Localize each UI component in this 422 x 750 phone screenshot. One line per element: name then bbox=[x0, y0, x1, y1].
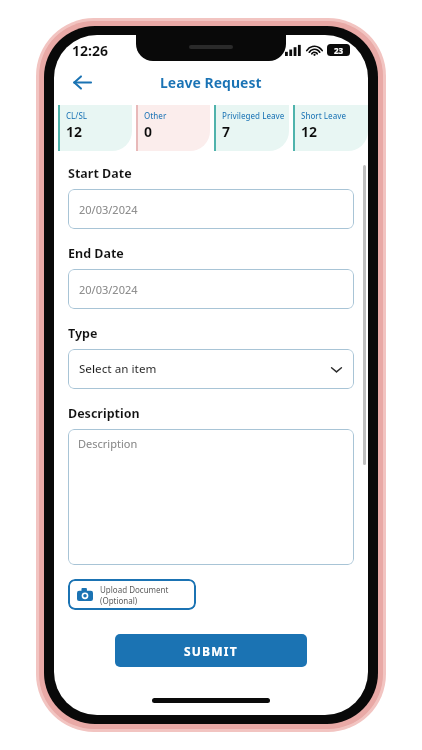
staticText: 12:26 bbox=[72, 41, 108, 60]
staticText: Type bbox=[68, 325, 98, 342]
button[interactable]: 20/03/2024 bbox=[68, 189, 354, 229]
staticText: 0 bbox=[144, 122, 153, 141]
button[interactable]: Other bbox=[136, 105, 210, 151]
staticText: SUBMIT bbox=[184, 643, 238, 659]
staticText: CL/SL bbox=[66, 110, 88, 121]
staticText: Start Date bbox=[68, 165, 132, 182]
staticText: 20/03/2024 bbox=[79, 282, 138, 297]
staticText: Privileged Leave bbox=[222, 110, 285, 121]
staticText: 12 bbox=[301, 122, 318, 141]
staticText: Select an item bbox=[79, 361, 157, 377]
staticText: Short Leave bbox=[301, 110, 347, 121]
staticText: End Date bbox=[68, 245, 124, 262]
button[interactable]: 20/03/2024 bbox=[68, 269, 354, 309]
button[interactable]: Description bbox=[68, 429, 354, 565]
button[interactable]: CL/SL bbox=[58, 105, 132, 151]
staticText: Description bbox=[78, 436, 138, 451]
button[interactable]: Privileged Leave bbox=[214, 105, 289, 151]
staticText: (Optional) bbox=[100, 595, 138, 606]
staticText: Description bbox=[68, 405, 140, 422]
staticText: 23 bbox=[334, 45, 344, 56]
button[interactable]: Upload Document bbox=[68, 579, 196, 610]
button[interactable]: SUBMIT bbox=[115, 634, 307, 667]
staticText: Leave Request bbox=[160, 73, 262, 92]
staticText: Upload Document bbox=[100, 584, 169, 595]
staticText: 20/03/2024 bbox=[79, 202, 138, 217]
staticText: 7 bbox=[222, 122, 231, 141]
staticText: 12 bbox=[66, 122, 83, 141]
button[interactable]: Short Leave bbox=[293, 105, 368, 151]
staticText: Other bbox=[144, 110, 167, 121]
button[interactable]: Select an item bbox=[68, 349, 354, 389]
button[interactable]: Back bbox=[64, 65, 100, 99]
